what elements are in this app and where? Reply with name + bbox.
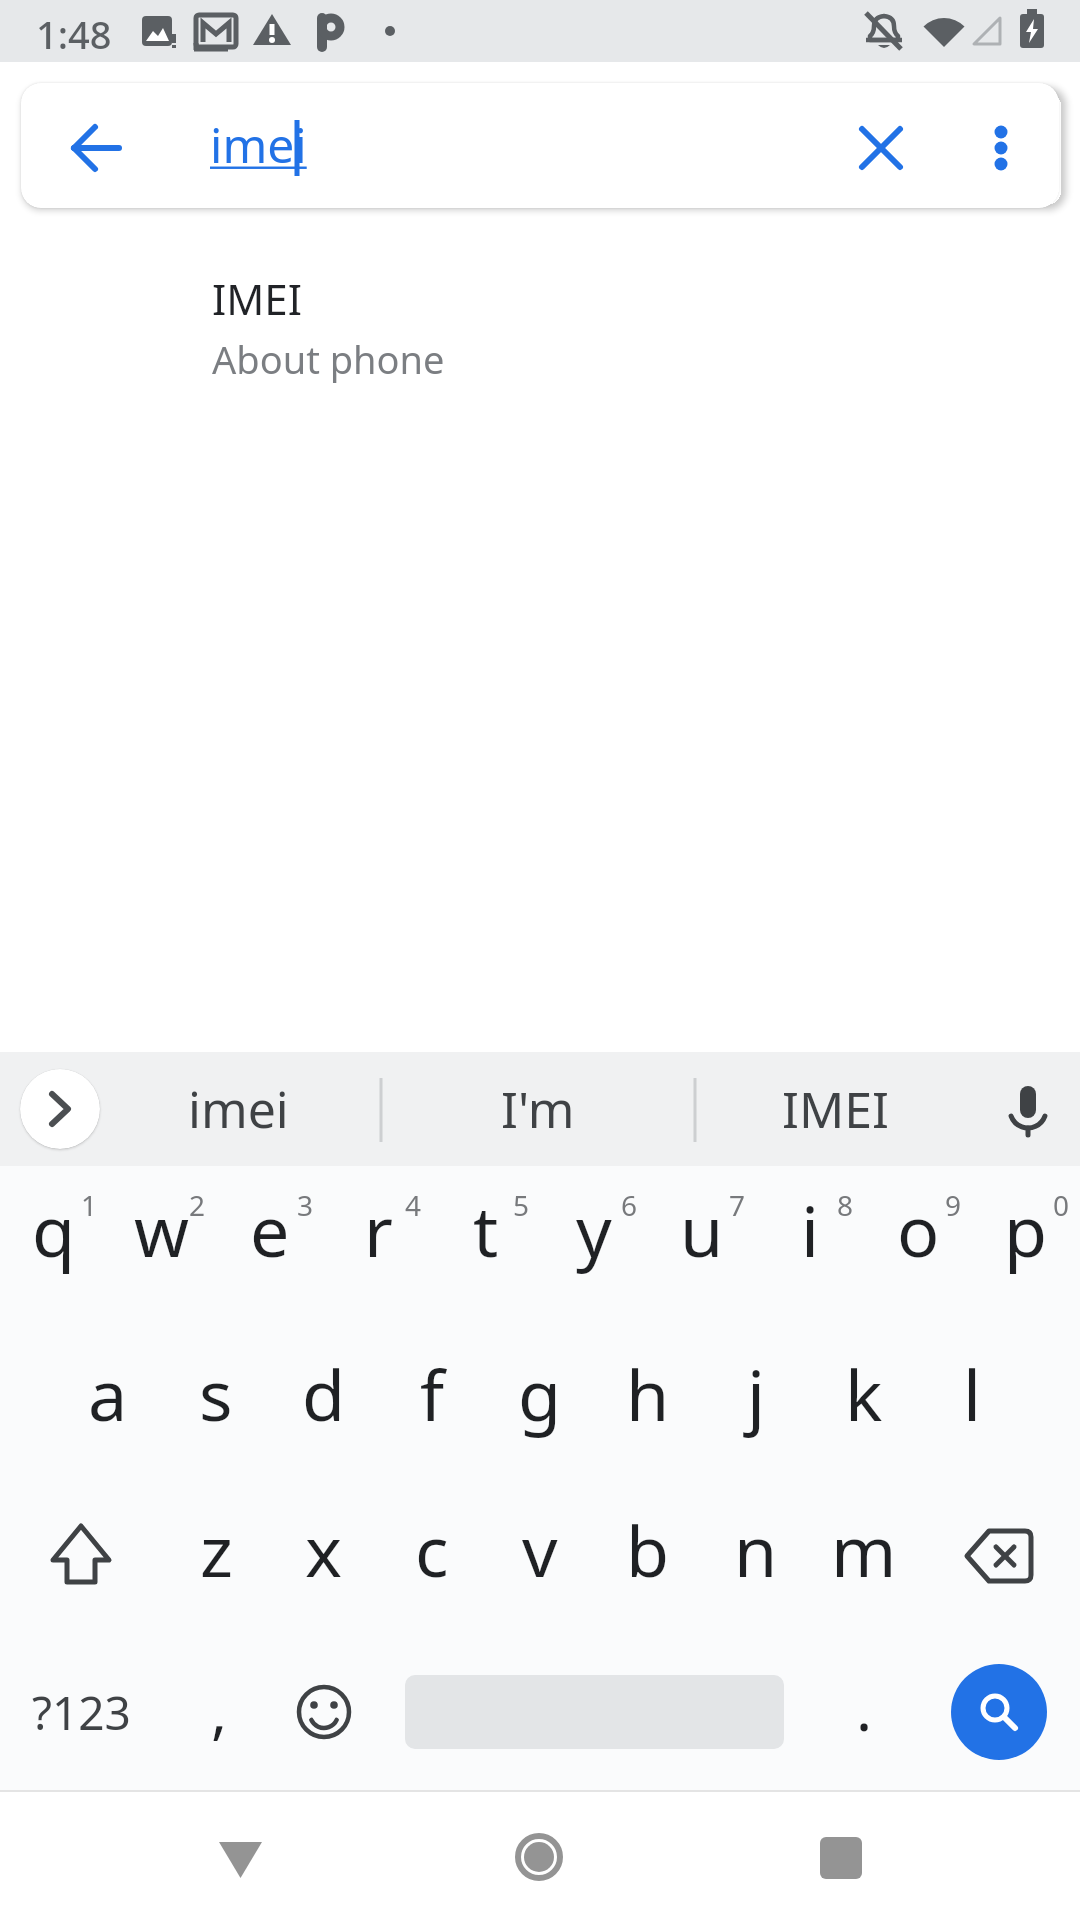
staticText: 6 bbox=[621, 1186, 638, 1224]
staticText: imei bbox=[210, 112, 307, 177]
button[interactable]: q bbox=[0, 1166, 108, 1322]
button[interactable]: n bbox=[702, 1478, 810, 1634]
staticText: j bbox=[747, 1346, 766, 1441]
button[interactable]: u bbox=[648, 1166, 756, 1322]
button[interactable]: o bbox=[864, 1166, 972, 1322]
staticText: 8 bbox=[837, 1186, 854, 1224]
button[interactable]: x bbox=[270, 1478, 378, 1634]
button[interactable]: p bbox=[972, 1166, 1080, 1322]
button[interactable]: j bbox=[702, 1322, 810, 1478]
staticText: y bbox=[576, 1182, 612, 1277]
button[interactable]: imei bbox=[120, 1052, 357, 1166]
button[interactable]: g bbox=[486, 1322, 594, 1478]
button[interactable] bbox=[360, 1790, 720, 1920]
button[interactable]: . bbox=[810, 1634, 918, 1790]
staticText: 1:48 bbox=[36, 8, 112, 60]
staticText: q bbox=[32, 1182, 76, 1277]
button[interactable] bbox=[951, 1664, 1047, 1760]
button[interactable]: c bbox=[378, 1478, 486, 1634]
staticText: k bbox=[845, 1346, 883, 1441]
staticText: a bbox=[88, 1346, 128, 1441]
button[interactable]: IMEI bbox=[0, 208, 1080, 418]
button[interactable]: imei bbox=[21, 83, 1059, 208]
button[interactable]: i bbox=[756, 1166, 864, 1322]
staticText: v bbox=[522, 1502, 558, 1597]
staticText: u bbox=[680, 1182, 724, 1277]
button[interactable] bbox=[378, 1634, 810, 1790]
staticText: s bbox=[199, 1346, 233, 1441]
button[interactable]: k bbox=[810, 1322, 918, 1478]
button[interactable] bbox=[0, 1790, 360, 1920]
button[interactable]: w bbox=[108, 1166, 216, 1322]
button[interactable]: t bbox=[432, 1166, 540, 1322]
button[interactable]: r bbox=[324, 1166, 432, 1322]
button[interactable] bbox=[980, 1072, 1060, 1146]
button[interactable]: l bbox=[918, 1322, 1026, 1478]
button[interactable]: I'm bbox=[383, 1052, 693, 1166]
staticText: IMEI bbox=[782, 1075, 890, 1143]
button[interactable]: b bbox=[594, 1478, 702, 1634]
button[interactable] bbox=[270, 1634, 378, 1790]
button[interactable] bbox=[0, 1478, 162, 1634]
staticText: 3 bbox=[297, 1186, 314, 1224]
staticText: 5 bbox=[513, 1186, 530, 1224]
staticText: h bbox=[626, 1346, 670, 1441]
staticText: 7 bbox=[729, 1186, 746, 1224]
staticText: x bbox=[305, 1502, 343, 1597]
button[interactable] bbox=[918, 1478, 1080, 1634]
button[interactable]: v bbox=[486, 1478, 594, 1634]
staticText: g bbox=[518, 1346, 562, 1441]
staticText: 9 bbox=[945, 1186, 962, 1224]
staticText: ?123 bbox=[32, 1681, 131, 1744]
button[interactable]: f bbox=[378, 1322, 486, 1478]
button[interactable]: a bbox=[54, 1322, 162, 1478]
button[interactable]: d bbox=[270, 1322, 378, 1478]
staticText: . bbox=[856, 1667, 873, 1749]
staticText: I'm bbox=[501, 1075, 575, 1143]
button[interactable]: y bbox=[540, 1166, 648, 1322]
button[interactable]: , bbox=[162, 1634, 270, 1790]
staticText: t bbox=[473, 1182, 499, 1277]
staticText: 2 bbox=[189, 1186, 206, 1224]
staticText: d bbox=[302, 1346, 346, 1441]
button[interactable]: ?123 bbox=[0, 1634, 162, 1790]
button[interactable]: IMEI bbox=[697, 1052, 975, 1166]
staticText: IMEI bbox=[212, 270, 302, 327]
staticText: , bbox=[211, 1669, 228, 1751]
staticText: m bbox=[831, 1502, 897, 1597]
staticText: 0 bbox=[1053, 1186, 1070, 1224]
button[interactable]: m bbox=[810, 1478, 918, 1634]
staticText: 4 bbox=[405, 1186, 422, 1224]
staticText: 1 bbox=[81, 1186, 98, 1224]
button[interactable] bbox=[20, 1069, 100, 1149]
button[interactable] bbox=[720, 1790, 1080, 1920]
staticText: w bbox=[134, 1182, 190, 1277]
staticText: b bbox=[626, 1502, 670, 1597]
staticText: r bbox=[364, 1182, 393, 1277]
staticText: f bbox=[420, 1346, 445, 1441]
staticText: imei bbox=[188, 1075, 289, 1143]
button[interactable]: z bbox=[162, 1478, 270, 1634]
staticText: z bbox=[200, 1502, 233, 1597]
staticText: c bbox=[415, 1502, 449, 1597]
staticText: l bbox=[963, 1346, 982, 1441]
staticText: i bbox=[801, 1182, 820, 1277]
staticText: n bbox=[734, 1502, 778, 1597]
staticText: p bbox=[1004, 1182, 1048, 1277]
staticText: e bbox=[250, 1182, 290, 1277]
button[interactable]: s bbox=[162, 1322, 270, 1478]
button[interactable]: h bbox=[594, 1322, 702, 1478]
staticText: o bbox=[897, 1182, 940, 1277]
staticText: About phone bbox=[212, 333, 445, 385]
button[interactable]: e bbox=[216, 1166, 324, 1322]
